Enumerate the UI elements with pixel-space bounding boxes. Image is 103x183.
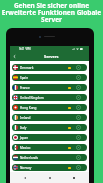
staticText: Norway bbox=[20, 166, 32, 170]
button[interactable]: France bbox=[12, 84, 87, 91]
button[interactable]: Norway bbox=[12, 164, 87, 171]
staticText: Japan bbox=[20, 136, 29, 140]
staticText: Mexico bbox=[20, 146, 31, 150]
button[interactable]: Recents bbox=[71, 175, 77, 181]
staticText: 9:41 VPN bbox=[19, 47, 31, 51]
button[interactable]: Back bbox=[22, 175, 28, 181]
button[interactable]: Denmark bbox=[12, 64, 87, 71]
staticText: Denmark bbox=[20, 66, 34, 70]
button[interactable]: Italy bbox=[12, 124, 87, 131]
staticText: Italy bbox=[20, 126, 27, 130]
staticText: Ireland bbox=[20, 116, 31, 120]
staticText: Gehen Sie sicher online Erweiterte Funkt… bbox=[1, 1, 102, 24]
button[interactable]: United Kingdom bbox=[12, 94, 87, 101]
staticText: Servers bbox=[44, 54, 59, 59]
staticText: Netherlands bbox=[20, 156, 38, 160]
button[interactable]: Japan bbox=[12, 134, 87, 141]
button[interactable]: Netherlands bbox=[12, 154, 87, 161]
button[interactable]: Mexico bbox=[12, 144, 87, 151]
staticText: France bbox=[20, 86, 30, 90]
staticText: Hong Kong bbox=[20, 106, 37, 110]
staticText: Spain bbox=[20, 76, 29, 80]
button[interactable]: Ireland bbox=[12, 114, 87, 121]
button[interactable]: Hong Kong bbox=[12, 104, 87, 111]
button[interactable]: Back bbox=[11, 53, 18, 60]
button[interactable]: Spain bbox=[12, 74, 87, 81]
staticText: United Kingdom bbox=[20, 96, 44, 100]
button[interactable]: Home bbox=[47, 175, 53, 181]
